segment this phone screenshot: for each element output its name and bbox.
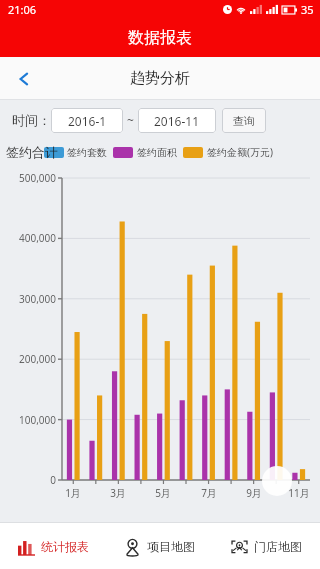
staticText: 2016-1 — [68, 113, 107, 129]
staticText: 数据报表 — [128, 28, 192, 48]
staticText: 100,000 — [0, 413, 56, 427]
button[interactable]: Back — [6, 61, 42, 97]
staticText: 签约面积 — [137, 146, 177, 159]
staticText: 查询 — [233, 114, 255, 128]
staticText: 35 — [301, 2, 314, 17]
staticText: ~ — [127, 112, 134, 128]
button[interactable]: 查询 — [222, 108, 266, 133]
staticText: 500,000 — [0, 171, 56, 185]
staticText: 趋势分析 — [130, 69, 190, 88]
staticText: 签约合计 — [6, 144, 58, 160]
staticText: 9月 — [240, 486, 268, 500]
staticText: 项目地图 — [147, 539, 195, 554]
staticText: 5月 — [149, 486, 177, 500]
button[interactable]: 统计报表 — [0, 523, 106, 569]
staticText: 门店地图 — [254, 539, 302, 554]
staticText: 21:06 — [8, 2, 37, 17]
staticText: 400,000 — [0, 231, 56, 245]
button[interactable]: 2016-1 — [51, 108, 123, 133]
staticText: 时间： — [12, 112, 51, 128]
staticText: 11月 — [285, 486, 313, 500]
staticText: 200,000 — [0, 352, 56, 366]
staticText: 签约金额(万元) — [207, 145, 273, 159]
staticText: 300,000 — [0, 292, 56, 306]
button[interactable]: 门店地图 — [213, 523, 320, 569]
staticText: 1月 — [59, 486, 87, 500]
staticText: 3月 — [104, 486, 132, 500]
button[interactable]: 2016-11 — [138, 108, 216, 133]
staticText: 统计报表 — [41, 539, 89, 554]
staticText: 0 — [0, 473, 56, 487]
button[interactable]: 项目地图 — [106, 523, 213, 569]
staticText: 2016-11 — [154, 113, 200, 129]
staticText: 7月 — [195, 486, 223, 500]
staticText: 签约套数 — [67, 146, 107, 159]
